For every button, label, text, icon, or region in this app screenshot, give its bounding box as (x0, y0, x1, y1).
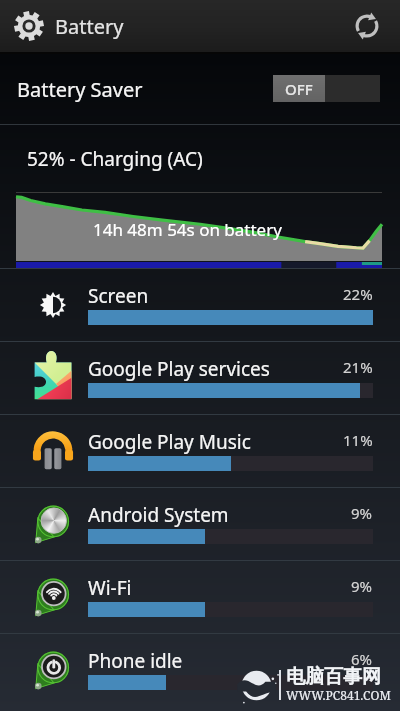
staticText: Wi-Fi (88, 575, 132, 601)
staticText: 14h 48m 54s on battery (93, 218, 282, 241)
staticText: 6% (351, 649, 373, 669)
staticText: 22% (343, 284, 373, 304)
button[interactable]: Refresh (338, 0, 396, 52)
staticText: Battery (55, 13, 124, 40)
button[interactable]: Wi-Fi (0, 561, 400, 633)
staticText: 21% (343, 357, 373, 377)
staticText: Google Play Music (88, 429, 251, 455)
staticText: Screen (88, 283, 149, 309)
staticText: 11% (343, 430, 373, 450)
staticText: 9% (351, 576, 373, 596)
staticText: Google Play services (88, 356, 270, 382)
button[interactable]: Battery Saver (0, 54, 400, 124)
button[interactable]: Google Play Music (0, 415, 400, 487)
staticText: 电脑百事网 (286, 665, 381, 689)
staticText: Android System (88, 502, 229, 528)
button[interactable]: Phone idle (0, 634, 400, 706)
staticText: 52% - Charging (AC) (27, 146, 203, 172)
button[interactable]: Google Play services (0, 342, 400, 414)
button[interactable]: Battery Saver toggle, off (273, 75, 380, 102)
staticText: Phone idle (88, 648, 183, 674)
button[interactable]: Screen (0, 269, 400, 341)
button[interactable]: Android System (0, 488, 400, 560)
staticText: OFF (285, 79, 313, 99)
staticText: WWW.PC841.COM (286, 687, 391, 703)
staticText: 9% (351, 503, 373, 523)
staticText: Battery Saver (17, 76, 143, 103)
